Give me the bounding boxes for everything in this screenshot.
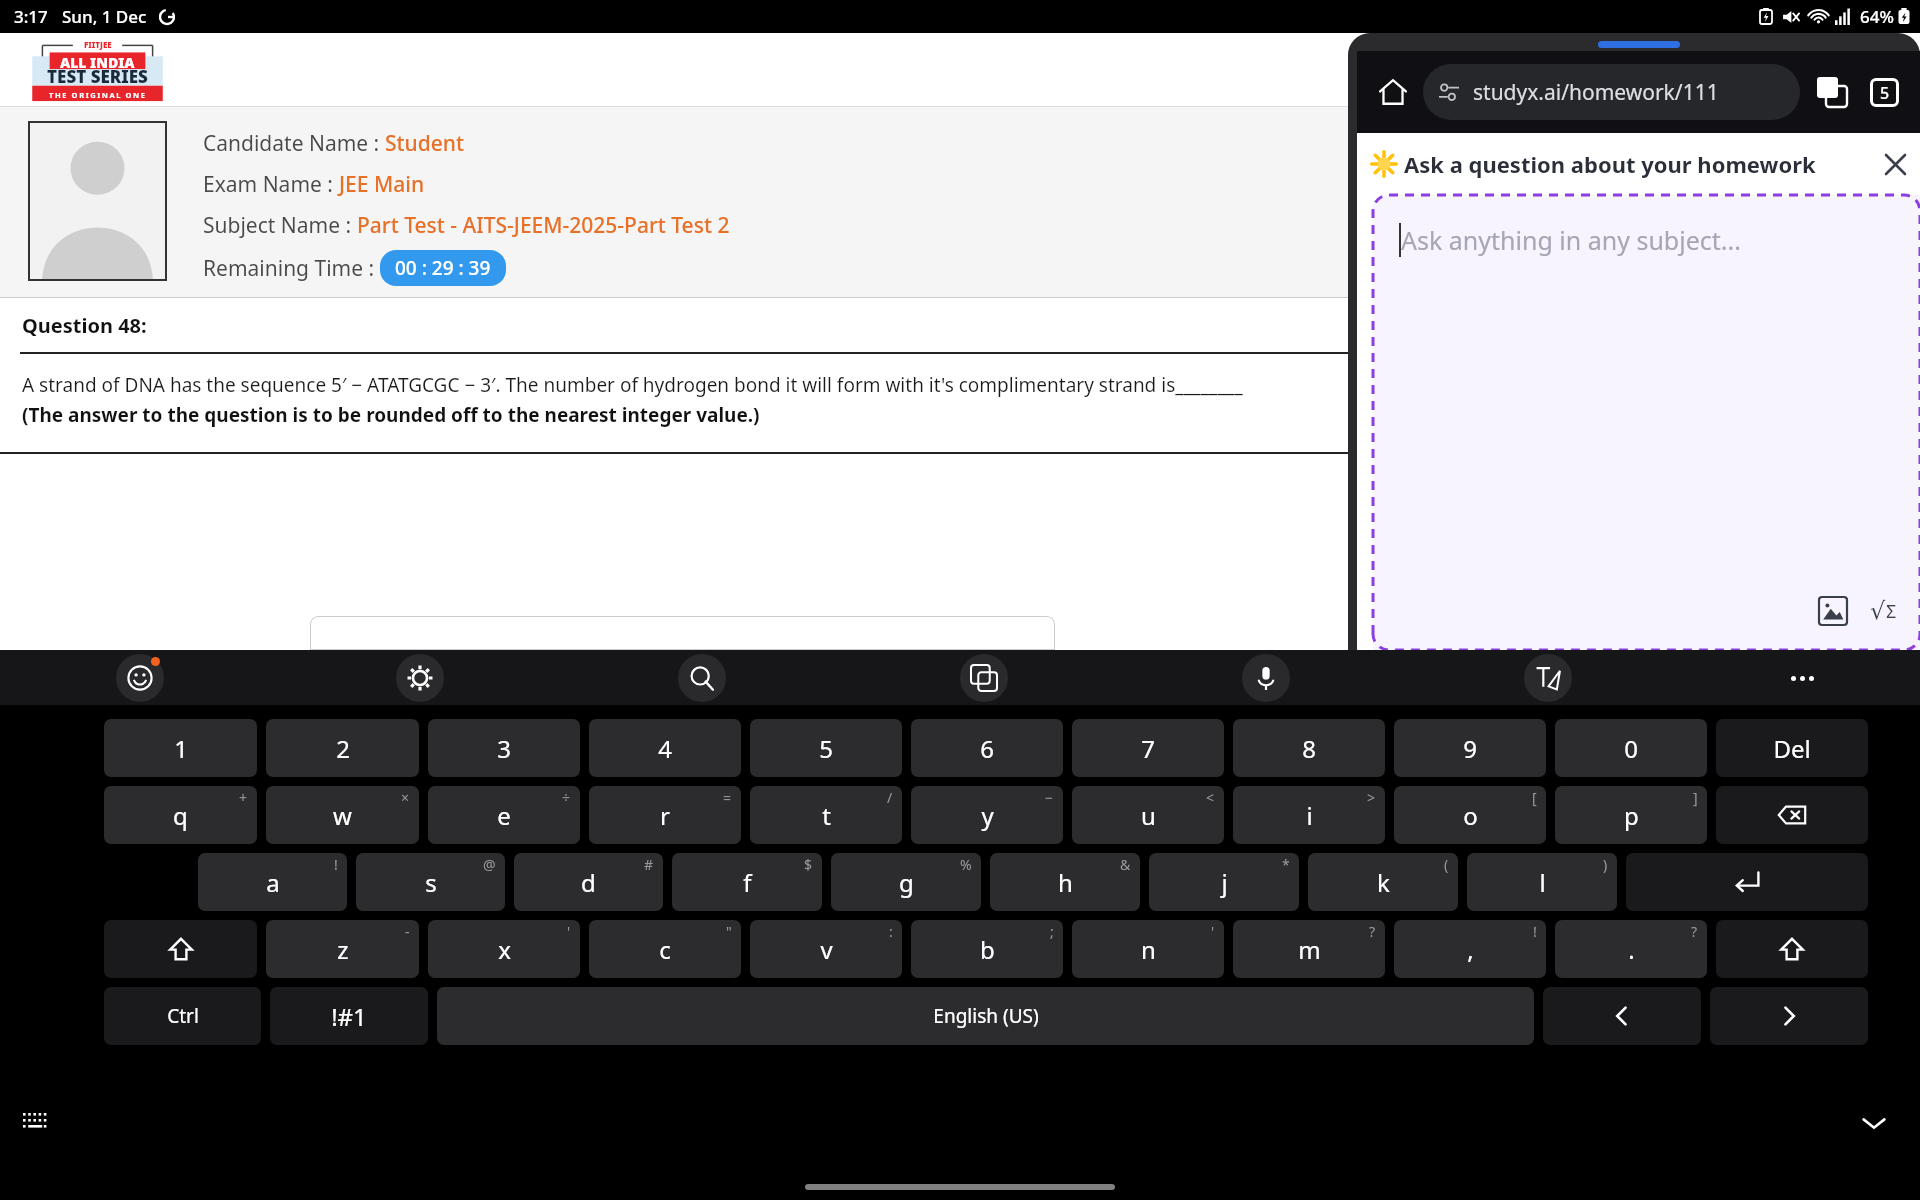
button[interactable]: d	[514, 853, 663, 911]
button[interactable]: backspace	[1716, 786, 1868, 844]
staticText: *	[1282, 855, 1290, 874]
staticText: q	[173, 799, 188, 832]
staticText: !	[1533, 922, 1537, 941]
staticText: '	[567, 922, 571, 941]
staticText: 4	[658, 732, 672, 765]
button[interactable]: z	[266, 920, 419, 978]
button[interactable]: !#1	[270, 987, 428, 1045]
button[interactable]: x	[428, 920, 580, 978]
button[interactable]: j	[1149, 853, 1299, 911]
button[interactable]: 1	[104, 719, 257, 777]
button[interactable]: More options	[1778, 654, 1826, 702]
button[interactable]: Keyboard settings	[396, 654, 444, 702]
button[interactable]: Search	[678, 654, 726, 702]
button[interactable]: Home	[1371, 70, 1415, 114]
staticText: $	[804, 855, 813, 874]
staticText: Ask anything in any subject...	[1401, 223, 1741, 257]
staticText: h	[1058, 866, 1073, 899]
staticText: Del	[1773, 732, 1811, 765]
button[interactable]: r	[589, 786, 741, 844]
staticText: d	[581, 866, 596, 899]
button[interactable]: Attach image	[1816, 594, 1850, 628]
button[interactable]: b	[911, 920, 1063, 978]
button[interactable]: g	[831, 853, 981, 911]
button[interactable]: Translate page	[1810, 70, 1854, 114]
staticText: j	[1221, 866, 1228, 899]
button[interactable]: shift	[104, 920, 257, 978]
button[interactable]: w	[266, 786, 419, 844]
button[interactable]: y	[911, 786, 1063, 844]
button[interactable]: Emoji	[116, 654, 164, 702]
button[interactable]: Del	[1716, 719, 1868, 777]
button[interactable]: .	[1555, 920, 1707, 978]
staticText: ,	[1467, 933, 1474, 966]
button[interactable]: Tabs	[1862, 70, 1906, 114]
button[interactable]: a	[198, 853, 347, 911]
staticText: %	[960, 855, 972, 874]
button[interactable]: Ctrl	[104, 987, 261, 1045]
button[interactable]: 7	[1072, 719, 1224, 777]
staticText: &	[1120, 855, 1131, 874]
button[interactable]: left	[1543, 987, 1701, 1045]
button[interactable]: ,	[1394, 920, 1546, 978]
button[interactable]: o	[1394, 786, 1546, 844]
staticText: @	[483, 855, 496, 874]
button[interactable]: Handwriting	[1524, 654, 1572, 702]
staticText: f	[743, 866, 752, 899]
button[interactable]: k	[1308, 853, 1458, 911]
button[interactable]: m	[1233, 920, 1385, 978]
button[interactable]: h	[990, 853, 1140, 911]
staticText: g	[899, 866, 914, 899]
button[interactable]: f	[672, 853, 822, 911]
button[interactable]: 0	[1555, 719, 1707, 777]
staticText: 5	[819, 732, 833, 765]
button[interactable]: 4	[589, 719, 741, 777]
staticText: i	[1306, 799, 1313, 832]
button[interactable]: 8	[1233, 719, 1385, 777]
button[interactable]: s	[356, 853, 505, 911]
button[interactable]: q	[104, 786, 257, 844]
button[interactable]: Close	[1878, 147, 1912, 181]
button[interactable]: v	[750, 920, 902, 978]
button[interactable]: p	[1555, 786, 1707, 844]
button[interactable]: 00 : 29 : 39	[380, 250, 506, 286]
staticText: z	[337, 933, 349, 966]
button[interactable]	[310, 616, 1055, 650]
button[interactable]: Math input	[1866, 594, 1900, 628]
button[interactable]: l	[1467, 853, 1617, 911]
staticText: 64%	[1860, 5, 1894, 28]
button[interactable]: Translate	[960, 654, 1008, 702]
button[interactable]: Hide keyboard	[1856, 1105, 1892, 1141]
button[interactable]: i	[1233, 786, 1385, 844]
staticText: −	[1045, 788, 1054, 807]
staticText: l	[1539, 866, 1546, 899]
staticText: 6	[980, 732, 994, 765]
button[interactable]: c	[589, 920, 741, 978]
button[interactable]: n	[1072, 920, 1224, 978]
button[interactable]: e	[428, 786, 580, 844]
button[interactable]: right	[1710, 987, 1868, 1045]
button[interactable]: studyx.ai/homework/111	[1423, 64, 1800, 120]
staticText: (The answer to the question is to be rou…	[22, 402, 760, 428]
staticText: y	[981, 799, 994, 832]
button[interactable]: 6	[911, 719, 1063, 777]
button[interactable]: u	[1072, 786, 1224, 844]
button[interactable]: 2	[266, 719, 419, 777]
staticText: ALL INDIA	[60, 53, 135, 72]
staticText: Candidate Name :	[203, 129, 385, 158]
staticText: (	[1444, 855, 1449, 874]
button[interactable]: 9	[1394, 719, 1546, 777]
button[interactable]: English (US)	[437, 987, 1534, 1045]
button[interactable]: Keyboard layout	[20, 1108, 50, 1138]
staticText: >	[1367, 788, 1376, 807]
button[interactable]: Ask anything in any subject...	[1373, 195, 1920, 650]
button[interactable]: Voice input	[1242, 654, 1290, 702]
button[interactable]: 3	[428, 719, 580, 777]
staticText: +	[239, 788, 248, 807]
button[interactable]: shift	[1716, 920, 1868, 978]
button[interactable]: t	[750, 786, 902, 844]
staticText: 0	[1624, 732, 1638, 765]
button[interactable]: 5	[750, 719, 902, 777]
button[interactable]: enter	[1626, 853, 1868, 911]
